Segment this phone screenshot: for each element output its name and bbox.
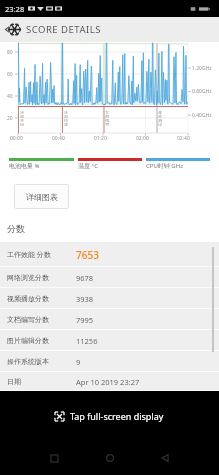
staticText: 7653	[76, 248, 99, 262]
staticText: 日期	[7, 377, 76, 386]
staticText: 视频播放分数	[7, 294, 76, 303]
staticText: 详细图表	[26, 192, 58, 202]
staticText: 电池电量 %	[9, 162, 40, 170]
staticText: 分数	[7, 223, 25, 234]
staticText: 3938	[76, 294, 94, 304]
staticText: 60	[7, 71, 13, 78]
staticText: 开	[20, 118, 25, 122]
staticText: 文	[105, 110, 110, 114]
staticText: 温度 °C	[78, 162, 98, 170]
staticText: 01:20	[94, 135, 107, 142]
staticText: 冷	[64, 110, 69, 114]
staticText: 工作效能 分数	[7, 250, 76, 260]
staticText: 基	[158, 110, 163, 114]
staticText: 02:00	[136, 135, 149, 142]
staticText: 0.80GHz	[192, 88, 212, 95]
staticText: 40	[7, 93, 13, 100]
button[interactable]: 文档编写分数	[0, 309, 219, 330]
staticText: 写	[105, 122, 110, 126]
staticText: 网络浏览分数	[7, 273, 76, 282]
button[interactable]: 视频播放分数	[0, 288, 219, 309]
button[interactable]: Recents	[44, 448, 64, 468]
staticText: Apr 10 2019 23:27	[76, 377, 140, 387]
staticText: 9678	[76, 273, 94, 283]
staticText: 7995	[76, 315, 94, 325]
staticText: 0.40GHz	[192, 112, 212, 119]
staticText: 结	[64, 118, 69, 122]
staticText: 80	[7, 49, 13, 56]
button[interactable]: Back	[155, 448, 175, 468]
staticText: 编	[105, 118, 110, 122]
staticText: 1.20GHz	[192, 65, 212, 72]
staticText: 却	[20, 114, 25, 118]
staticText: 23:28	[5, 4, 25, 14]
staticText: 11256	[76, 336, 98, 346]
staticText: 始	[20, 122, 25, 126]
staticText: SCORE DETAILS	[26, 23, 101, 36]
button[interactable]: 网络浏览分数	[0, 267, 219, 288]
staticText: Tap full-screen display	[70, 410, 164, 422]
staticText: 准	[158, 114, 163, 118]
staticText: 00:40	[52, 135, 65, 142]
staticText: 束	[64, 122, 69, 126]
staticText: 20	[7, 115, 13, 122]
staticText: 文档编写分数	[7, 315, 76, 324]
button[interactable]: Back	[0, 23, 13, 36]
staticText: 02:40	[177, 135, 190, 142]
staticText: 00:00	[10, 135, 23, 142]
button[interactable]: Home	[100, 448, 120, 468]
staticText: 档	[105, 114, 110, 118]
staticText: CPU时钟 GHz	[146, 162, 184, 170]
staticText: 9	[76, 357, 81, 367]
button[interactable]: 操作系统版本	[0, 351, 219, 372]
staticText: 图片编辑分数	[7, 336, 76, 345]
button[interactable]: 详细图表	[14, 184, 69, 209]
staticText: 却	[64, 114, 69, 118]
staticText: 试	[158, 122, 163, 126]
button[interactable]: Tap full-screen display	[0, 391, 219, 441]
button[interactable]: 日期	[0, 372, 219, 391]
staticText: 测	[158, 118, 163, 122]
staticText: 操作系统版本	[7, 357, 76, 366]
button[interactable]: 工作效能 分数	[0, 242, 219, 267]
button[interactable]: 图片编辑分数	[0, 330, 219, 351]
staticText: 冷	[20, 110, 25, 114]
